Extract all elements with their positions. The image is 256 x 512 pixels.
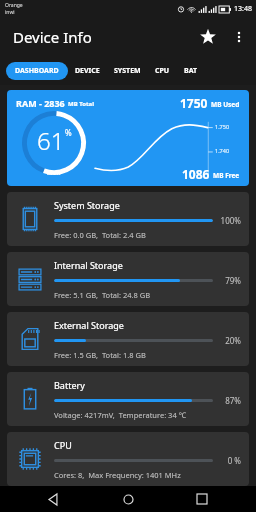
staticText: RAM - 2836 [16,97,68,109]
staticText: BAT [184,66,198,76]
button[interactable]: DASHBOARD [6,62,68,80]
button[interactable]: Battery [7,372,249,426]
staticText: DASHBOARD [15,66,59,76]
staticText: External Storage [54,319,124,331]
button[interactable]: Back [34,486,74,512]
staticText: MB Used [211,100,240,109]
button[interactable]: More options [224,22,254,52]
staticText: System Storage [54,199,120,211]
staticText: 100% [219,215,241,226]
staticText: SYSTEM [114,66,141,76]
staticText: 13:48 [234,4,252,14]
button[interactable]: CPU [7,432,249,486]
button[interactable]: CPU [148,62,177,80]
staticText: DEVICE [75,66,100,76]
staticText: Free: 5.1 GB, Total: 24.8 GB [54,290,151,300]
staticText: Orange [5,2,23,9]
staticText: MB Free [213,171,240,180]
button[interactable]: DEVICE [68,62,107,80]
staticText: 87% [219,395,241,406]
staticText: Voltage: 4217mV, Temperature: 34 ℃ [54,410,187,420]
button[interactable]: RAM - 2836 [7,90,249,186]
button[interactable]: Home [108,486,148,512]
staticText: CPU [155,66,170,76]
staticText: 1086 [182,166,213,182]
button[interactable]: External Storage [7,312,249,366]
staticText: 79% [219,275,241,286]
button[interactable]: BAT [177,62,205,80]
staticText: inwi [5,9,15,16]
button[interactable]: SYSTEM [107,62,148,80]
button[interactable]: Recents [182,486,222,512]
staticText: Device Info [13,27,92,47]
staticText: RAM [47,169,61,177]
staticText: Free: 0.0 GB, Total: 2.4 GB [54,230,146,240]
staticText: 1.740 [215,147,230,154]
staticText: 1.750 [215,123,230,130]
staticText: 20% [219,335,241,346]
staticText: Free: 1.5 GB, Total: 1.8 GB [54,350,146,360]
staticText: Cores: 8, Max Frequency: 1401 MHz [54,470,181,480]
button[interactable]: Internal Storage [7,252,249,306]
staticText: % [65,127,72,138]
button[interactable]: System Storage [7,192,249,246]
staticText: 0 % [219,455,241,466]
staticText: 1750 [180,95,211,111]
staticText: 61 [37,124,65,157]
staticText: Internal Storage [54,259,123,271]
staticText: MB Total [68,100,94,108]
staticText: CPU [54,439,72,451]
staticText: Battery [54,379,85,391]
button[interactable]: Favorite [192,21,224,53]
